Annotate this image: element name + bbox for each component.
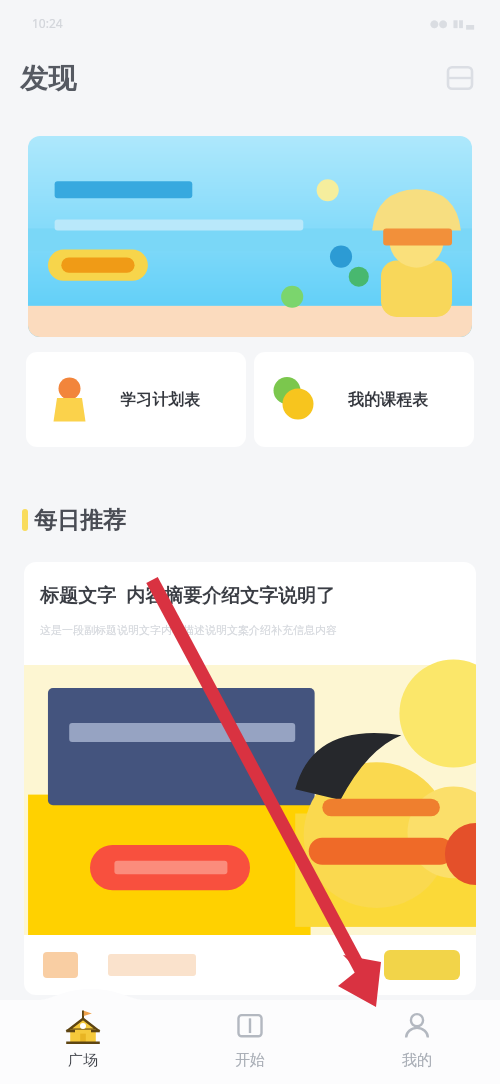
button[interactable]: 学习计划表 (26, 352, 246, 447)
button[interactable]: 广场 (0, 989, 166, 1084)
button[interactable]: 我的 (333, 989, 500, 1084)
button[interactable]: 标题文字 内容摘要介绍文字说明了 (24, 562, 476, 995)
staticText: 我的课程表 (348, 390, 428, 410)
staticText: 这是一段副标题说明文字内容描述说明文案介绍补充信息内容 (40, 623, 337, 637)
staticText: ●● ▮▮ ▃ (430, 16, 474, 30)
staticText: 学习计划表 (120, 390, 200, 410)
staticText: 发现 (20, 61, 76, 96)
staticText: 10:24 (32, 15, 63, 31)
button[interactable]: 扫一扫 (445, 63, 475, 93)
button[interactable]: 我的课程表 (254, 352, 474, 447)
staticText: 每日推荐 (34, 506, 126, 535)
button[interactable] (28, 136, 472, 337)
staticText: 标题文字 内容摘要介绍文字说明了 (40, 582, 335, 608)
staticText: 开始 (235, 1051, 265, 1070)
staticText: 广场 (68, 1051, 98, 1070)
staticText: 我的 (402, 1051, 432, 1070)
button[interactable]: 开始 (166, 989, 333, 1084)
button[interactable] (384, 950, 460, 980)
